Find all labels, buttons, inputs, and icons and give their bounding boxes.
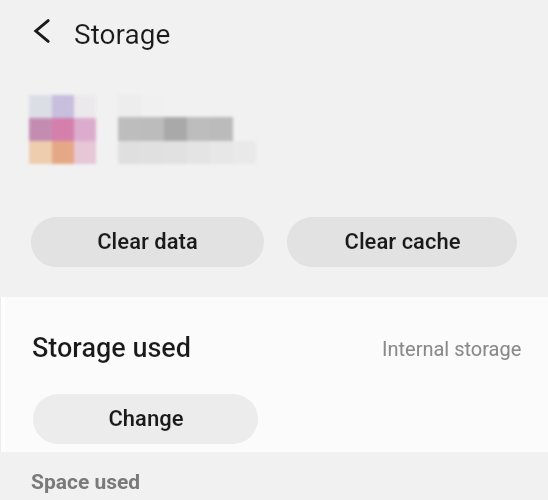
staticText: Internal storage	[382, 337, 522, 360]
button[interactable]: Clear cache	[287, 217, 517, 267]
staticText: Storage	[74, 18, 171, 51]
button[interactable]: Change	[33, 394, 258, 444]
button[interactable]: Clear data	[31, 217, 264, 267]
staticText: Clear data	[97, 229, 198, 255]
staticText: Space used	[31, 470, 141, 495]
button[interactable]: Navigate up	[18, 7, 66, 55]
staticText: Clear cache	[344, 229, 461, 255]
button[interactable]	[0, 297, 548, 387]
staticText: Storage used	[32, 332, 192, 364]
staticText: Change	[108, 406, 184, 432]
